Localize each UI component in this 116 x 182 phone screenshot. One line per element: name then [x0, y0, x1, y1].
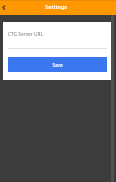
staticText: CTG Server URL [8, 31, 44, 38]
button[interactable]: Save [8, 57, 107, 72]
button[interactable]: Back [0, 0, 14, 15]
staticText: Settings [45, 3, 67, 11]
staticText: Save [52, 62, 63, 68]
